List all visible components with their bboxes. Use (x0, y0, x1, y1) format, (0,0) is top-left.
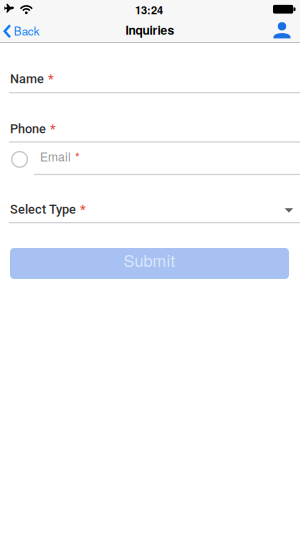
staticText: * (75, 148, 80, 165)
button[interactable]: Profile (272, 22, 300, 533)
button[interactable]: Back (3, 23, 40, 39)
button[interactable]: Submit (10, 248, 289, 279)
staticText: Email (40, 148, 71, 165)
staticText: Submit (123, 248, 175, 271)
staticText: Name (10, 72, 44, 86)
staticText: Select Type (10, 202, 76, 217)
staticText: * (48, 72, 54, 86)
button[interactable]: Select Type (9, 196, 300, 222)
staticText: Phone (10, 122, 46, 136)
button[interactable]: Email (12, 152, 27, 167)
staticText: * (80, 202, 86, 217)
staticText: * (50, 122, 56, 136)
staticText: Inquiries (125, 21, 174, 38)
staticText: 13:24 (135, 2, 163, 18)
staticText: Back (14, 22, 40, 39)
